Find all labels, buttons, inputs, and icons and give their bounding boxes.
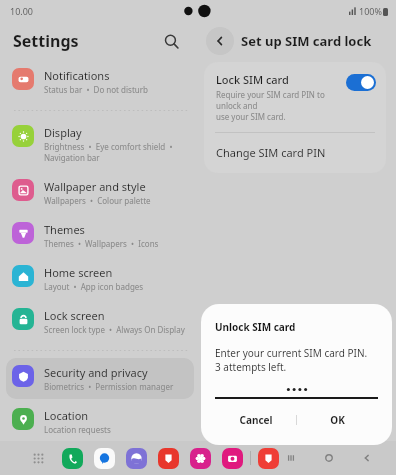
- staticText: Home screen: [44, 265, 113, 280]
- button[interactable]: Gallery: [190, 448, 211, 469]
- button[interactable]: Galaxy Store: [158, 448, 179, 469]
- staticText: Enter your current SIM card PIN. 3 attem…: [215, 346, 368, 374]
- button[interactable]: Messages: [94, 448, 115, 469]
- button[interactable]: Security and privacy: [6, 358, 194, 399]
- button[interactable]: Home screen: [6, 258, 194, 299]
- button[interactable]: Cancel: [215, 403, 296, 437]
- button[interactable]: Back: [356, 447, 378, 469]
- staticText: Layout • App icon badges: [44, 281, 144, 292]
- button[interactable]: Recents: [280, 447, 302, 469]
- staticText: Cancel: [239, 413, 273, 427]
- button[interactable]: Home: [318, 447, 340, 469]
- staticText: Wallpapers • Colour palette: [44, 195, 151, 206]
- button[interactable]: Location: [6, 401, 194, 442]
- staticText: Location requests: [44, 424, 111, 435]
- button[interactable]: Change SIM card PIN: [204, 133, 386, 173]
- button[interactable]: Wallpaper and style: [6, 172, 194, 213]
- button[interactable]: Lock screen: [6, 301, 194, 342]
- staticText: Notifications: [44, 68, 110, 83]
- button[interactable]: Themes: [6, 215, 194, 256]
- button[interactable]: Apps: [28, 448, 48, 468]
- button[interactable]: My Files: [258, 448, 279, 469]
- staticText: Wallpaper and style: [44, 179, 146, 194]
- staticText: Display: [44, 125, 82, 140]
- staticText: Location: [44, 408, 89, 423]
- button[interactable]: Display: [6, 118, 194, 170]
- button[interactable]: Phone: [62, 448, 83, 469]
- staticText: Lock screen: [44, 308, 105, 323]
- staticText: Lock SIM card: [216, 72, 289, 87]
- button[interactable]: Notifications: [6, 61, 194, 102]
- button[interactable]: Lock SIM card: [204, 62, 386, 132]
- staticText: Themes • Wallpapers • Icons: [44, 238, 159, 249]
- staticText: 100%: [359, 5, 382, 17]
- staticText: Screen lock type • Always On Display: [44, 324, 185, 335]
- staticText: Change SIM card PIN: [216, 145, 326, 160]
- staticText: Unlock SIM card: [215, 320, 296, 334]
- staticText: Safety and emergency: [44, 451, 160, 466]
- button[interactable]: OK: [297, 403, 378, 437]
- staticText: 10.00: [10, 5, 34, 17]
- button[interactable]: Lock SIM card toggle: [346, 74, 376, 91]
- button[interactable]: Back: [206, 27, 234, 55]
- staticText: Biometrics • Permission manager: [44, 381, 174, 392]
- staticText: Brightness • Eye comfort shield • Naviga…: [44, 141, 173, 163]
- button[interactable]: Internet: [126, 448, 147, 469]
- staticText: Status bar • Do not disturb: [44, 84, 148, 95]
- staticText: OK: [330, 413, 345, 427]
- staticText: Themes: [44, 222, 85, 237]
- button[interactable]: Camera: [222, 448, 243, 469]
- button[interactable]: Search: [158, 28, 184, 54]
- button[interactable]: Safety and emergency: [6, 444, 194, 474]
- staticText: Set up SIM card lock: [241, 32, 372, 50]
- staticText: Require your SIM card PIN to unlock and …: [216, 89, 340, 122]
- staticText: Settings: [13, 30, 79, 52]
- staticText: Security and privacy: [44, 365, 148, 380]
